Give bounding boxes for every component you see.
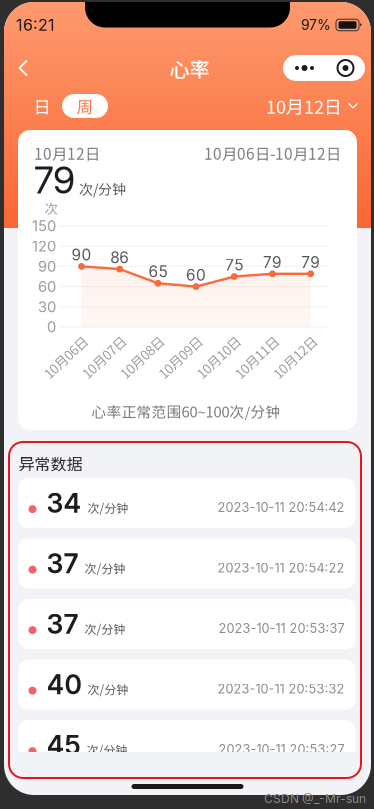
- staticText: 16:21: [16, 15, 55, 35]
- staticText: 37: [46, 608, 78, 640]
- staticText: 10月12日: [34, 142, 100, 164]
- staticText: 10月11日: [229, 347, 283, 367]
- staticText: 日: [33, 94, 50, 118]
- staticText: 10月06日: [38, 347, 92, 367]
- button[interactable]: 10月12日: [266, 88, 358, 124]
- staticText: 79: [263, 253, 282, 272]
- staticText: 10月12日: [266, 93, 342, 119]
- staticText: 10月09日: [153, 347, 207, 367]
- button[interactable]: 34: [18, 478, 355, 528]
- staticText: 2023-10-11 20:53:27: [218, 742, 344, 757]
- button[interactable]: 37: [18, 538, 355, 588]
- staticText: 10月12日: [268, 347, 322, 367]
- staticText: 150: [32, 217, 56, 235]
- button[interactable]: 37: [18, 599, 355, 649]
- button[interactable]: 40: [18, 659, 355, 709]
- staticText: 86: [110, 248, 129, 267]
- staticText: 65: [148, 262, 167, 281]
- staticText: 次/分钟: [86, 741, 127, 758]
- staticText: 40: [46, 668, 81, 701]
- staticText: 90: [38, 257, 56, 275]
- staticText: 次/分钟: [84, 559, 125, 577]
- staticText: 75: [225, 256, 243, 274]
- staticText: 心率: [169, 53, 209, 82]
- staticText: 79: [34, 157, 75, 203]
- staticText: 0: [47, 318, 56, 336]
- staticText: 90: [71, 246, 91, 264]
- staticText: 120: [32, 237, 56, 255]
- staticText: 10月07日: [77, 347, 131, 367]
- staticText: 30: [38, 298, 56, 316]
- staticText: 10月08日: [115, 347, 169, 367]
- staticText: 异常数据: [18, 451, 82, 475]
- staticText: CSDN @_-Mr-sun: [264, 791, 366, 806]
- staticText: 周: [76, 94, 93, 118]
- staticText: 10月06日-10月12日: [204, 142, 341, 164]
- staticText: 2023-10-11 20:54:42: [217, 500, 344, 515]
- staticText: 60: [186, 266, 206, 284]
- staticText: 60: [38, 278, 56, 295]
- staticText: 次/分钟: [79, 178, 126, 199]
- button[interactable]: 周: [62, 94, 108, 118]
- staticText: 心率正常范围60~100次/分钟: [91, 400, 280, 422]
- staticText: 2023-10-11 20:53:32: [217, 681, 344, 697]
- staticText: 97%: [301, 16, 331, 33]
- staticText: 34: [46, 487, 81, 519]
- button[interactable]: Close: [326, 55, 365, 81]
- staticText: 79: [301, 253, 320, 272]
- staticText: 45: [46, 729, 80, 761]
- button[interactable]: 45: [18, 720, 355, 770]
- staticText: 37: [46, 547, 78, 580]
- staticText: 次/分钟: [87, 680, 128, 698]
- staticText: 次/分钟: [84, 620, 125, 637]
- staticText: 2023-10-11 20:54:22: [217, 560, 344, 576]
- button[interactable]: 日: [22, 94, 62, 118]
- button[interactable]: More: [283, 55, 326, 81]
- staticText: 2023-10-11 20:53:37: [218, 621, 344, 636]
- staticText: 10月10日: [191, 347, 245, 367]
- staticText: 次/分钟: [87, 499, 128, 516]
- staticText: 次: [44, 198, 57, 218]
- button[interactable]: Back: [4, 49, 42, 86]
